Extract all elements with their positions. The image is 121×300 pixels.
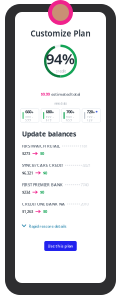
staticText: Use this plan <box>47 243 73 249</box>
staticText: 660+ <box>25 109 33 114</box>
staticText: Update balances <box>22 129 76 138</box>
staticText: $9.99 <box>41 92 50 97</box>
staticText: Rapid rescore details <box>28 223 66 229</box>
staticText: 94% <box>46 49 75 68</box>
staticText: FIRST PREMIER BANK <box>22 182 63 187</box>
staticText: $234 <box>22 189 30 195</box>
button[interactable]: 720+ <box>82 108 100 122</box>
staticText: •••••••••4421 <box>64 163 90 168</box>
staticText: $0 <box>43 170 47 175</box>
staticText: 580 - 599 <box>25 115 33 122</box>
staticText: CREDIT ONE BANK NA <box>22 201 65 207</box>
button[interactable]: Use this plan <box>44 241 77 251</box>
staticText: immediate <box>53 102 67 105</box>
button[interactable]: 660+ <box>20 108 39 122</box>
staticText: $273 <box>22 151 30 156</box>
staticText: $0 <box>40 189 44 195</box>
staticText: SYNCB/CARE CREDIT <box>22 163 63 168</box>
staticText: $0 <box>40 151 44 156</box>
staticText: 700 - 720 <box>87 115 95 122</box>
staticText: 680+ <box>46 109 54 114</box>
staticText: 600 - 619 <box>46 115 54 122</box>
staticText: credit <box>55 68 65 73</box>
button[interactable]: 680+ <box>41 108 59 122</box>
staticText: $6,321 <box>22 170 33 175</box>
staticText: FIRSTWATCH RETAIL <box>22 143 60 149</box>
button[interactable]: Rapid rescore details <box>22 222 99 230</box>
staticText: ••••••••7740 <box>64 182 88 187</box>
staticText: Customize Plan <box>30 28 90 39</box>
staticText: $0 <box>43 209 47 214</box>
staticText: $1,263 <box>22 209 33 214</box>
staticText: estimated total <box>51 92 80 97</box>
staticText: •••••••2010 <box>66 201 88 207</box>
staticText: 720+ <box>87 109 95 114</box>
staticText: •••••••••1181 <box>61 143 87 149</box>
button[interactable]: 700+ <box>61 108 80 122</box>
staticText: 640 - 659 <box>66 115 74 122</box>
staticText: 700+ <box>66 109 74 114</box>
